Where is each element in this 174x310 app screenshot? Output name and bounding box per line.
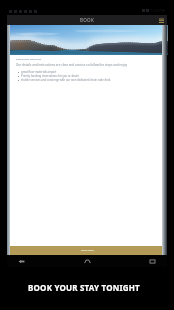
button[interactable]: Recents [147,256,158,267]
staticText: BOOK YOUR STAY TONIGHT [28,282,140,293]
staticText: BOOK NOW [81,249,94,252]
staticText: 7:34 PM [150,8,166,13]
button[interactable]: BOOK NOW [7,246,167,255]
staticText: shuttle services and concierge with our … [21,78,111,82]
button[interactable]: Home [82,256,93,267]
staticText: Reservation Made easy [16,58,42,61]
button[interactable]: Back [16,256,27,267]
staticText: BOOK [80,17,95,23]
staticText: Priority booking reservations for you or… [21,74,80,78]
staticText: great floor materials airport [21,70,57,74]
staticText: Our details and instructions are clear a… [16,63,127,67]
button[interactable]: Menu [159,18,164,23]
